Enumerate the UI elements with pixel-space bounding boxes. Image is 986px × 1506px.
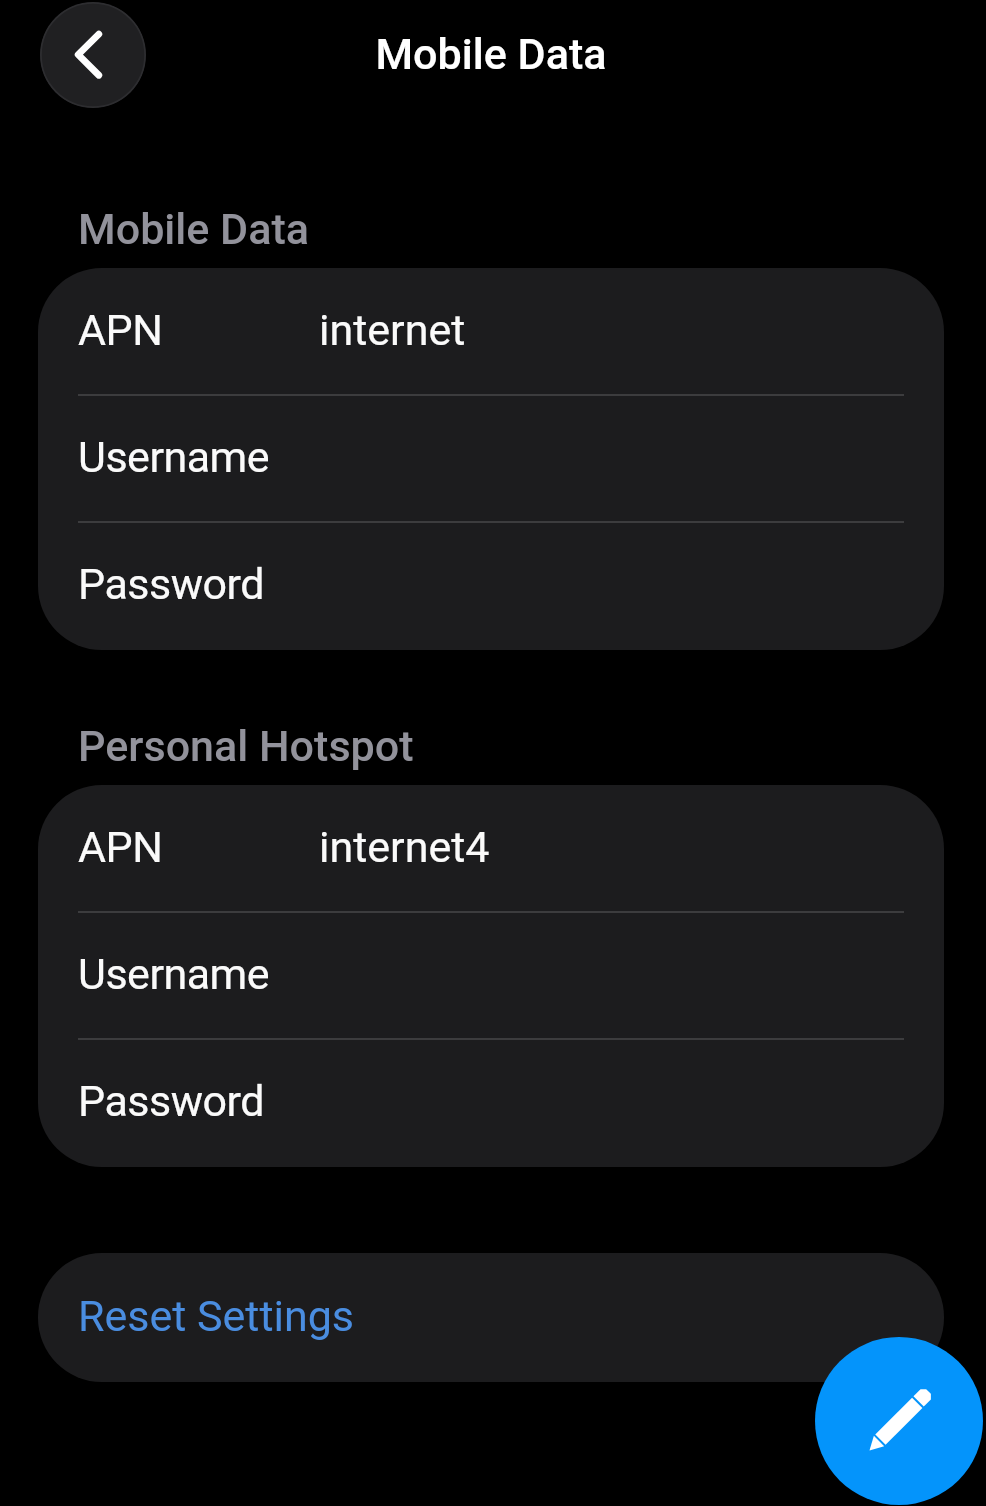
button[interactable]: Username [38,912,944,1039]
staticText: APN [78,305,163,355]
staticText: Personal Hotspot [78,721,414,771]
staticText: Username [78,949,270,999]
staticText: Mobile Data [0,29,984,79]
staticText: APN [78,822,163,872]
staticText: Password [78,1076,264,1126]
button[interactable]: APN [38,785,944,912]
staticText: Reset Settings [78,1291,355,1341]
staticText: Password [78,559,264,609]
button[interactable]: Edit [815,1337,983,1505]
button[interactable]: Password [38,1039,944,1166]
button[interactable]: Reset Settings [38,1253,944,1382]
button[interactable]: Back [40,2,146,108]
staticText: internet [319,305,466,355]
button[interactable]: APN [38,268,944,395]
staticText: Mobile Data [78,204,310,254]
button[interactable]: Password [38,522,944,649]
staticText: internet4 [319,822,490,872]
button[interactable]: Username [38,395,944,522]
staticText: Username [78,432,270,482]
